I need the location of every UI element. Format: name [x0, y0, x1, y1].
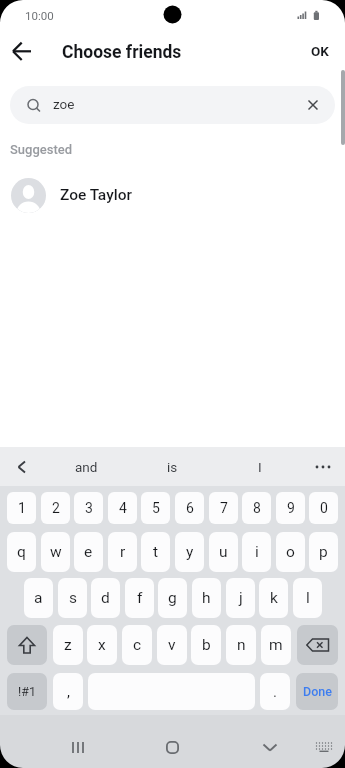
staticText: !#1 [18, 684, 36, 699]
staticText: , [67, 683, 70, 701]
button[interactable]: i [242, 532, 271, 572]
button[interactable] [306, 447, 340, 486]
staticText: w [50, 543, 62, 561]
staticText: t [153, 543, 159, 561]
button[interactable]: 1 [7, 492, 36, 524]
button[interactable]: Zoe Taylor [0, 172, 345, 219]
button[interactable]: q [7, 532, 36, 572]
staticText: Choose friends [62, 42, 182, 63]
staticText: p [319, 543, 328, 561]
staticText: 2 [52, 500, 60, 516]
staticText: v [168, 636, 176, 654]
button[interactable]: is [136, 447, 208, 486]
button[interactable]: OK [300, 38, 340, 64]
staticText: I [258, 459, 262, 475]
button[interactable] [152, 732, 192, 762]
staticText: j [239, 589, 243, 607]
button[interactable]: 9 [276, 492, 305, 524]
button[interactable]: 0 [309, 492, 338, 524]
button[interactable]: 6 [175, 492, 204, 524]
button[interactable]: a [24, 578, 53, 618]
button[interactable]: . [260, 673, 290, 710]
button[interactable]: r [108, 532, 137, 572]
staticText: 8 [253, 500, 261, 516]
staticText: l [306, 589, 310, 607]
button[interactable]: m [261, 625, 291, 665]
button[interactable]: v [157, 625, 187, 665]
staticText: q [17, 543, 26, 561]
staticText: n [237, 636, 246, 654]
button[interactable]: and [50, 447, 122, 486]
staticText: k [270, 589, 278, 607]
button[interactable]: d [91, 578, 120, 618]
staticText: d [101, 589, 110, 607]
staticText: Zoe Taylor [60, 186, 132, 204]
button[interactable] [4, 447, 40, 486]
staticText: m [269, 636, 283, 654]
button[interactable]: o [276, 532, 305, 572]
staticText: Suggested [10, 142, 73, 157]
button[interactable]: f [125, 578, 154, 618]
button[interactable] [4, 36, 44, 66]
button[interactable]: h [192, 578, 221, 618]
button[interactable]: 4 [108, 492, 137, 524]
button[interactable]: 3 [74, 492, 103, 524]
button[interactable]: 5 [141, 492, 170, 524]
staticText: x [98, 636, 106, 654]
staticText: e [84, 543, 93, 561]
staticText: 9 [287, 500, 295, 516]
staticText: c [133, 636, 142, 654]
staticText: 0 [320, 500, 328, 516]
button[interactable]: t [141, 532, 170, 572]
staticText: 6 [186, 500, 194, 516]
button[interactable]: g [158, 578, 187, 618]
staticText: i [255, 543, 259, 561]
staticText: 3 [85, 500, 93, 516]
button[interactable] [7, 625, 47, 665]
button[interactable]: l [293, 578, 322, 618]
staticText: 1 [18, 500, 26, 516]
button[interactable]: s [58, 578, 87, 618]
staticText: zoe [53, 96, 75, 112]
button[interactable]: p [309, 532, 338, 572]
button[interactable] [58, 732, 98, 762]
staticText: and [75, 459, 98, 475]
button[interactable] [308, 735, 340, 759]
staticText: f [137, 589, 143, 607]
staticText: u [219, 543, 228, 561]
button[interactable]: x [87, 625, 117, 665]
button[interactable]: n [226, 625, 256, 665]
button[interactable]: w [41, 532, 70, 572]
button[interactable]: 8 [242, 492, 271, 524]
button[interactable]: u [209, 532, 238, 572]
button[interactable]: I [224, 447, 296, 486]
staticText: b [202, 636, 211, 654]
button[interactable]: Done [296, 673, 338, 710]
staticText: r [120, 543, 126, 561]
staticText: a [34, 589, 43, 607]
staticText: s [69, 589, 77, 607]
button[interactable] [250, 732, 290, 762]
staticText: . [273, 683, 277, 701]
staticText: 4 [119, 500, 127, 516]
button[interactable]: b [191, 625, 221, 665]
button[interactable]: e [74, 532, 103, 572]
staticText: 5 [152, 500, 160, 516]
staticText: z [64, 636, 72, 654]
button[interactable]: 2 [41, 492, 70, 524]
staticText: 10:00 [25, 9, 54, 22]
button[interactable]: c [122, 625, 152, 665]
staticText: OK [311, 43, 329, 59]
button[interactable]: zoe [10, 86, 335, 124]
button[interactable]: j [226, 578, 255, 618]
button[interactable]: 7 [209, 492, 238, 524]
button[interactable]: , [53, 673, 83, 710]
staticText: g [168, 589, 177, 607]
staticText: 7 [220, 500, 228, 516]
button[interactable]: z [53, 625, 83, 665]
button[interactable]: k [259, 578, 288, 618]
button[interactable] [297, 625, 338, 665]
button[interactable]: !#1 [7, 673, 47, 710]
button[interactable]: y [175, 532, 204, 572]
